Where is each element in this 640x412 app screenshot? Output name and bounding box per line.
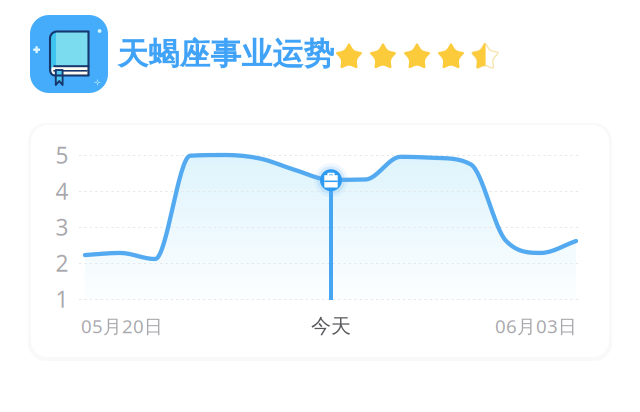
- staticText: 06月03日: [495, 314, 577, 338]
- staticText: 2: [55, 248, 68, 278]
- staticText: 天蝎座事业运势: [117, 35, 334, 73]
- staticText: 今天: [311, 314, 351, 338]
- staticText: 3: [55, 212, 68, 242]
- staticText: 5: [55, 140, 68, 170]
- staticText: 1: [55, 284, 68, 314]
- button[interactable]: 天蝎座事业运势: [0, 0, 640, 108]
- staticText: 4: [55, 176, 68, 206]
- staticText: 05月20日: [81, 314, 163, 338]
